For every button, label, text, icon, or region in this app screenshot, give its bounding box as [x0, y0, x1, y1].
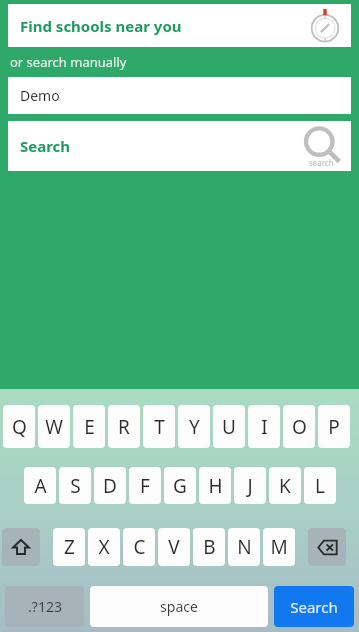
button[interactable]: B [193, 528, 225, 566]
button[interactable]: Backspace [308, 528, 346, 566]
staticText: Q [12, 414, 27, 440]
button[interactable]: D [94, 467, 126, 504]
button[interactable]: Shift [2, 528, 40, 566]
staticText: E [84, 414, 95, 440]
button[interactable]: K [269, 467, 301, 504]
button[interactable]: space [90, 586, 268, 627]
button[interactable]: .?123 [5, 586, 84, 627]
button[interactable]: J [234, 467, 266, 504]
button[interactable]: Y [178, 405, 210, 448]
staticText: Search [20, 136, 71, 156]
staticText: H [208, 473, 223, 499]
staticText: T [154, 414, 165, 440]
staticText: U [222, 414, 236, 440]
staticText: M [270, 534, 288, 560]
staticText: X [98, 534, 110, 560]
staticText: .?123 [28, 597, 62, 616]
button[interactable]: A [24, 467, 56, 504]
staticText: V [168, 534, 180, 560]
button[interactable]: I [248, 405, 280, 448]
staticText: O [292, 414, 307, 440]
button[interactable]: U [213, 405, 245, 448]
staticText: N [237, 534, 252, 560]
staticText: A [34, 473, 47, 499]
staticText: I [261, 414, 268, 440]
staticText: search [309, 157, 334, 168]
staticText: Z [64, 534, 75, 560]
staticText: space [160, 597, 198, 616]
staticText: or search manually [10, 53, 127, 71]
button[interactable]: E [73, 405, 105, 448]
staticText: S [70, 473, 81, 499]
button[interactable]: W [38, 405, 70, 448]
button[interactable]: Demo [8, 77, 351, 114]
button[interactable]: Search [274, 586, 354, 627]
button[interactable]: M [263, 528, 295, 566]
button[interactable]: S [59, 467, 91, 504]
button[interactable]: L [304, 467, 336, 504]
button[interactable]: R [108, 405, 140, 448]
button[interactable]: O [283, 405, 315, 448]
button[interactable]: X [88, 528, 120, 566]
staticText: Demo [20, 86, 60, 105]
staticText: K [279, 473, 291, 499]
staticText: Y [189, 414, 200, 440]
button[interactable]: V [158, 528, 190, 566]
staticText: Find schools near you [20, 16, 182, 36]
button[interactable]: N [228, 528, 260, 566]
button[interactable]: Q [3, 405, 35, 448]
staticText: Search [290, 597, 338, 617]
button[interactable]: H [199, 467, 231, 504]
staticText: J [247, 473, 253, 499]
button[interactable]: C [123, 528, 155, 566]
staticText: W [45, 414, 63, 440]
staticText: R [118, 414, 130, 440]
staticText: G [173, 473, 187, 499]
staticText: B [203, 534, 216, 560]
staticText: D [103, 473, 117, 499]
button[interactable]: Find schools near you [8, 4, 351, 47]
staticText: C [133, 534, 146, 560]
button[interactable]: T [143, 405, 175, 448]
staticText: P [328, 414, 340, 440]
button[interactable]: G [164, 467, 196, 504]
button[interactable]: Search [8, 121, 351, 171]
button[interactable]: Z [53, 528, 85, 566]
button[interactable]: P [318, 405, 350, 448]
button[interactable]: F [129, 467, 161, 504]
staticText: F [140, 473, 150, 499]
staticText: L [315, 473, 325, 499]
